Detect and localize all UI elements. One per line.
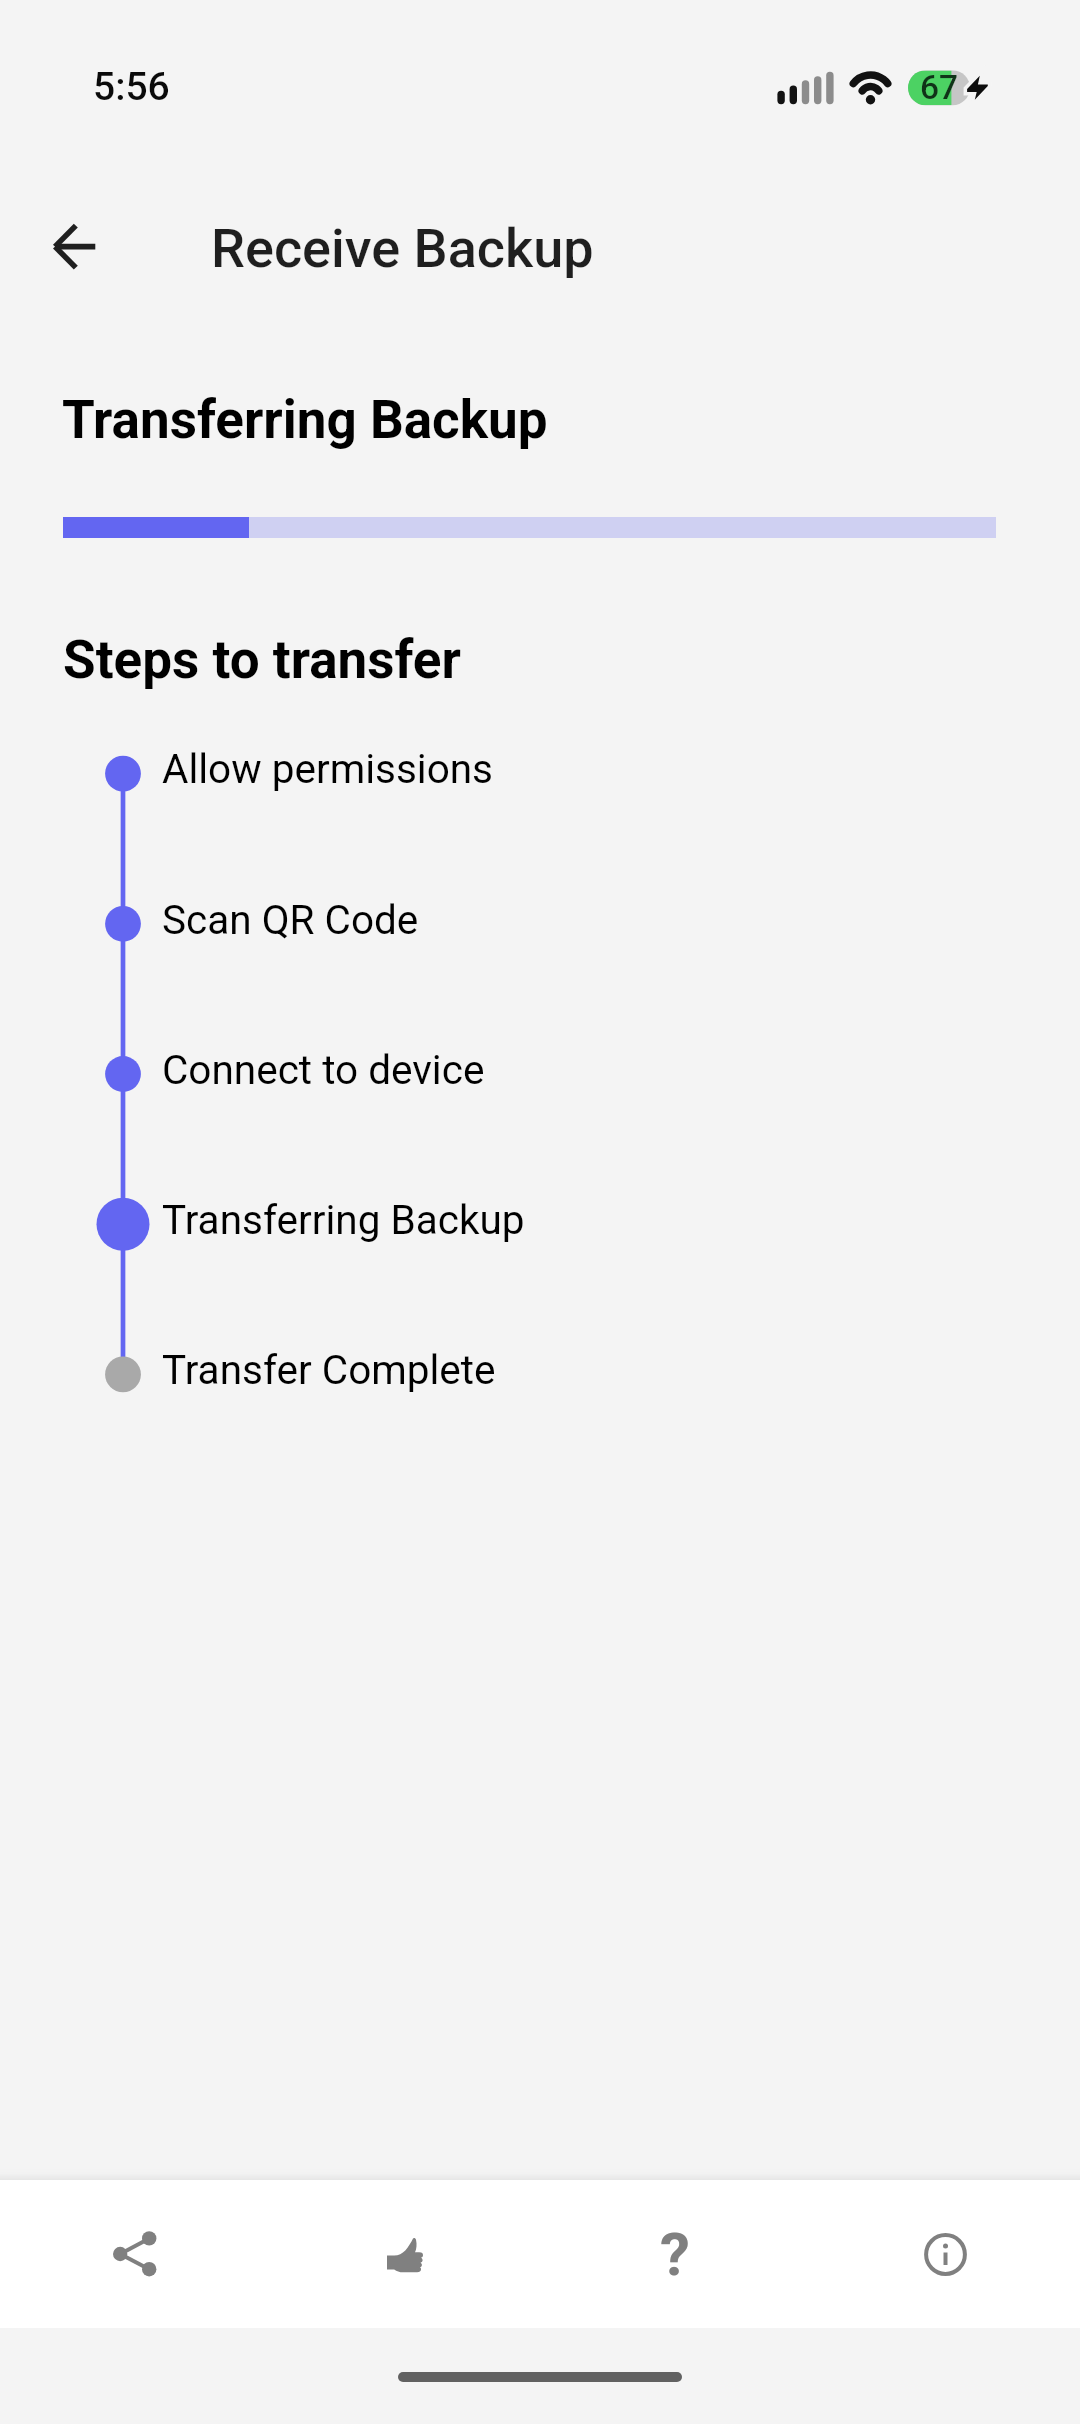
staticText: ? xyxy=(660,2219,690,2289)
button[interactable]: Info xyxy=(810,2180,1080,2328)
staticText: Transferring Backup xyxy=(162,1196,525,1243)
button[interactable]: Help xyxy=(540,2180,810,2328)
staticText: 5:56 xyxy=(93,64,170,110)
button[interactable]: Share xyxy=(0,2180,270,2328)
button[interactable]: Like xyxy=(270,2180,540,2328)
staticText: Allow permissions xyxy=(162,745,494,792)
button[interactable]: Transferring Backup xyxy=(162,1196,525,1244)
button[interactable]: Allow permissions xyxy=(162,745,494,793)
staticText: Scan QR Code xyxy=(162,896,419,943)
staticText: 67 xyxy=(920,68,959,107)
button[interactable]: Transfer Complete xyxy=(162,1346,496,1394)
staticText: Transfer Complete xyxy=(162,1346,496,1393)
button[interactable]: Connect to device xyxy=(162,1046,485,1094)
staticText: Connect to device xyxy=(162,1046,485,1093)
staticText: Steps to transfer xyxy=(63,629,461,691)
button[interactable]: Back xyxy=(26,200,120,294)
staticText: Receive Backup xyxy=(211,217,594,280)
button[interactable]: Scan QR Code xyxy=(162,896,419,944)
staticText: Transferring Backup xyxy=(62,389,548,451)
